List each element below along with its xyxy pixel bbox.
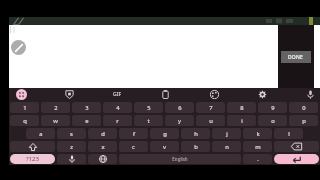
button[interactable]: w xyxy=(41,115,70,126)
staticText: b xyxy=(194,143,198,151)
button[interactable]: Backspace xyxy=(274,141,319,152)
button[interactable]: Emoji xyxy=(57,154,86,164)
button[interactable]: Compose xyxy=(11,40,26,55)
button[interactable]: g xyxy=(150,128,179,139)
staticText: d xyxy=(101,130,105,138)
button[interactable]: 8 xyxy=(227,102,256,113)
staticText: w xyxy=(53,117,58,125)
staticText: a xyxy=(39,130,43,138)
button[interactable]: p xyxy=(289,115,318,126)
staticText: e xyxy=(85,117,89,125)
staticText: 0 xyxy=(302,104,306,112)
staticText: 7 xyxy=(209,104,213,112)
button[interactable]: x xyxy=(88,141,117,152)
staticText: p xyxy=(302,117,306,125)
staticText: z xyxy=(70,143,73,151)
staticText: English xyxy=(172,156,188,162)
button[interactable]: 5 xyxy=(134,102,163,113)
staticText: r xyxy=(116,117,119,125)
button[interactable]: Enter xyxy=(274,154,319,164)
button[interactable]: Language xyxy=(88,154,117,164)
staticText: t xyxy=(147,117,150,125)
button[interactable]: q xyxy=(10,115,39,126)
button[interactable]: ?123 xyxy=(10,154,55,164)
button[interactable]: m xyxy=(243,141,272,152)
button[interactable]: gif xyxy=(106,88,128,101)
button[interactable]: sticker xyxy=(58,88,80,101)
staticText: q xyxy=(23,117,27,125)
button[interactable]: f xyxy=(119,128,148,139)
staticText: k xyxy=(256,130,260,138)
button[interactable]: s xyxy=(57,128,86,139)
button[interactable]: a xyxy=(26,128,55,139)
staticText: j xyxy=(226,130,228,138)
staticText: n xyxy=(225,143,229,151)
button[interactable]: 0 xyxy=(289,102,318,113)
staticText: c xyxy=(132,143,135,151)
button[interactable]: clipboard xyxy=(154,88,176,101)
button[interactable]: 1 xyxy=(10,102,39,113)
button[interactable]: i xyxy=(227,115,256,126)
staticText: x xyxy=(101,143,105,151)
staticText: 6 xyxy=(178,104,182,112)
button[interactable]: b xyxy=(181,141,210,152)
button[interactable]: DONE xyxy=(281,51,311,63)
button[interactable]: English xyxy=(119,154,241,164)
button[interactable]: settings xyxy=(251,88,273,101)
staticText: s xyxy=(70,130,73,138)
button[interactable]: 7 xyxy=(196,102,225,113)
button[interactable]: 3 xyxy=(72,102,101,113)
button[interactable]: t xyxy=(134,115,163,126)
button[interactable]: y xyxy=(165,115,194,126)
button[interactable]: r xyxy=(103,115,132,126)
button[interactable]: e xyxy=(72,115,101,126)
staticText: 3 xyxy=(85,104,89,112)
staticText: g xyxy=(163,130,167,138)
staticText: 8 xyxy=(240,104,244,112)
staticText: 2 xyxy=(54,104,58,112)
button[interactable]: c xyxy=(119,141,148,152)
staticText: i xyxy=(241,117,243,125)
staticText: o xyxy=(271,117,275,125)
staticText: v xyxy=(163,143,166,151)
button[interactable]: v xyxy=(150,141,179,152)
button[interactable]: 2 xyxy=(41,102,70,113)
button[interactable]: u xyxy=(196,115,225,126)
button[interactable]: o xyxy=(258,115,287,126)
staticText: l xyxy=(288,130,290,138)
staticText: y xyxy=(178,117,181,125)
button[interactable]: k xyxy=(243,128,272,139)
button[interactable]: emoji xyxy=(10,88,32,101)
button[interactable]: n xyxy=(212,141,241,152)
staticText: f xyxy=(133,130,135,138)
button[interactable]: d xyxy=(88,128,117,139)
staticText: 5 xyxy=(147,104,151,112)
staticText: 1 xyxy=(23,104,27,112)
button[interactable]: mic xyxy=(299,88,320,101)
staticText: DONE xyxy=(288,54,304,61)
staticText: m xyxy=(255,143,261,151)
button[interactable]: l xyxy=(274,128,303,139)
staticText: h xyxy=(194,130,198,138)
button[interactable]: 9 xyxy=(258,102,287,113)
button[interactable]: 4 xyxy=(103,102,132,113)
button[interactable]: theme xyxy=(203,88,225,101)
button[interactable]: 6 xyxy=(165,102,194,113)
button[interactable]: z xyxy=(57,141,86,152)
staticText: . xyxy=(257,155,259,163)
staticText: ?123 xyxy=(26,155,39,163)
button[interactable]: h xyxy=(181,128,210,139)
staticText: 4 xyxy=(116,104,120,112)
button[interactable]: . xyxy=(243,154,272,164)
button[interactable]: Shift xyxy=(10,141,55,152)
staticText: 9 xyxy=(271,104,275,112)
button[interactable]: j xyxy=(212,128,241,139)
staticText: GIF xyxy=(113,91,122,98)
staticText: u xyxy=(209,117,213,125)
